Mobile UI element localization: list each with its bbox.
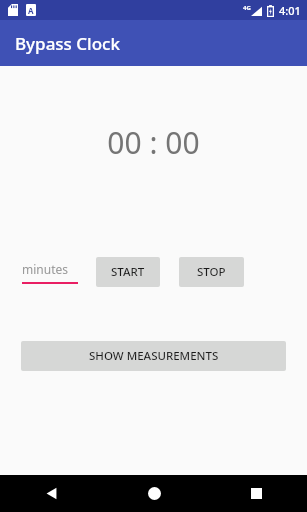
staticText: 4G xyxy=(243,4,251,12)
button[interactable]: Back xyxy=(0,475,103,512)
staticText: 00 : 00 xyxy=(107,122,200,163)
staticText: STOP xyxy=(197,264,226,280)
button[interactable]: SHOW MEASUREMENTS xyxy=(21,341,286,371)
staticText: minutes xyxy=(22,261,68,277)
button[interactable]: Recent apps xyxy=(205,475,307,512)
button[interactable]: Home xyxy=(103,475,205,512)
staticText: 4:01 xyxy=(279,3,301,18)
button[interactable]: minutes xyxy=(22,261,78,284)
button[interactable]: STOP xyxy=(179,257,244,287)
staticText: A xyxy=(28,5,34,16)
button[interactable]: START xyxy=(96,257,160,287)
staticText: START xyxy=(111,264,145,280)
staticText: Bypass Clock xyxy=(15,32,120,55)
staticText: SHOW MEASUREMENTS xyxy=(89,348,219,364)
